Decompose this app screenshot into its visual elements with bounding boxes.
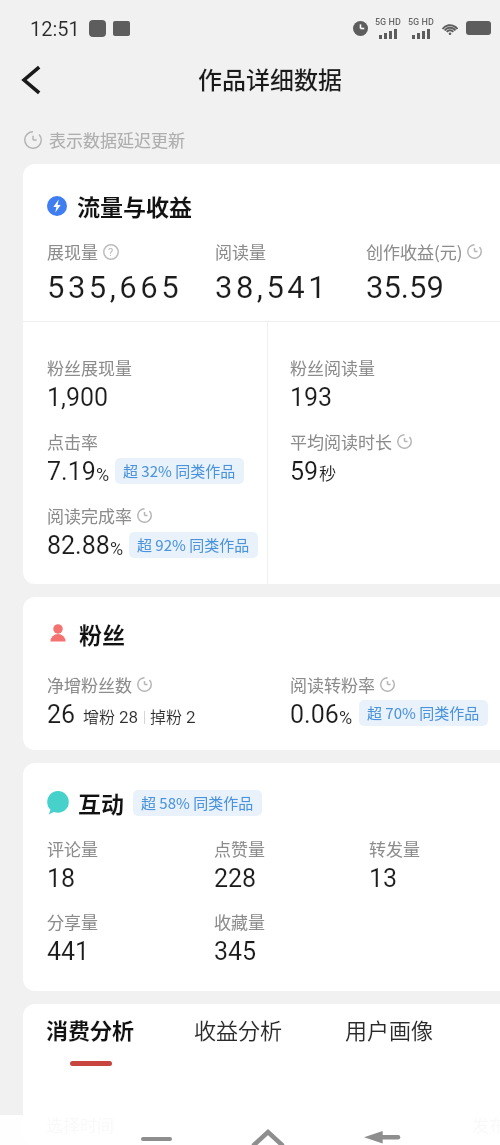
staticText: 82.88	[47, 531, 110, 560]
staticText: 193	[290, 383, 333, 412]
button[interactable]: Home	[239, 1119, 297, 1145]
staticText: 点赞量	[214, 836, 265, 861]
staticText: 阅读完成率	[47, 503, 132, 528]
staticText: 秒	[319, 460, 336, 485]
staticText: 收益分析	[194, 1013, 283, 1045]
staticText: 超 58% 同类作品	[141, 792, 254, 814]
staticText: 转发量	[369, 836, 420, 861]
staticText: 7.19	[47, 457, 96, 486]
staticText: 28	[119, 707, 139, 727]
button[interactable]: 粉丝	[47, 617, 125, 650]
staticText: 收藏量	[214, 909, 265, 934]
staticText: 5G HD	[375, 17, 401, 28]
staticText: 35.59	[366, 269, 444, 305]
button[interactable]: 用户画像	[345, 1013, 434, 1061]
staticText: 互动	[78, 786, 124, 819]
button[interactable]: Back	[8, 56, 58, 104]
button[interactable]: 流量与收益	[47, 189, 192, 222]
button[interactable]: 收益分析	[194, 1013, 283, 1061]
staticText: 441	[47, 937, 90, 966]
staticText: 增粉	[83, 704, 116, 727]
staticText: 净增粉丝数	[47, 672, 132, 697]
staticText: 超 32% 同类作品	[123, 460, 236, 482]
staticText: 阅读量	[215, 239, 266, 264]
button[interactable]: 互动	[47, 786, 262, 819]
staticText: 流量与收益	[77, 189, 192, 222]
staticText: 26	[47, 700, 76, 729]
staticText: 535,665	[47, 269, 183, 305]
staticText: 作品详细数据	[198, 61, 342, 96]
staticText: 超 70% 同类作品	[367, 702, 480, 724]
staticText: 2	[186, 707, 196, 727]
staticText: 展现量	[47, 239, 98, 264]
button[interactable]: Back	[350, 1119, 412, 1145]
staticText: 评论量	[47, 836, 98, 861]
staticText: 228	[214, 864, 257, 893]
staticText: 38,541	[215, 269, 330, 305]
staticText: 12:51	[30, 17, 80, 40]
button[interactable]: 消费分析	[46, 1013, 135, 1066]
staticText: %	[339, 707, 353, 728]
staticText: 345	[214, 937, 257, 966]
staticText: %	[96, 464, 110, 485]
staticText: 用户画像	[345, 1013, 434, 1045]
staticText: 13	[369, 864, 398, 893]
staticText: ?	[108, 246, 114, 259]
staticText: 粉丝展现量	[47, 355, 132, 380]
staticText: 阅读转粉率	[290, 672, 375, 697]
staticText: 掉粉	[150, 704, 183, 727]
button[interactable]: Recents	[126, 1119, 186, 1145]
staticText: 消费分析	[46, 1013, 135, 1045]
staticText: %	[110, 538, 124, 559]
staticText: 59	[290, 457, 319, 486]
staticText: 5G HD	[408, 17, 434, 28]
staticText: 1,900	[47, 383, 109, 412]
staticText: 创作收益(元)	[366, 239, 463, 264]
staticText: 粉丝	[79, 617, 125, 650]
staticText: 超 92% 同类作品	[137, 534, 250, 556]
staticText: 粉丝阅读量	[290, 355, 375, 380]
staticText: 表示数据延迟更新	[49, 127, 185, 152]
staticText: 18	[47, 864, 76, 893]
staticText: 平均阅读时长	[290, 429, 392, 454]
staticText: 点击率	[47, 429, 98, 454]
staticText: 0.06	[290, 700, 339, 729]
staticText: 分享量	[47, 909, 98, 934]
